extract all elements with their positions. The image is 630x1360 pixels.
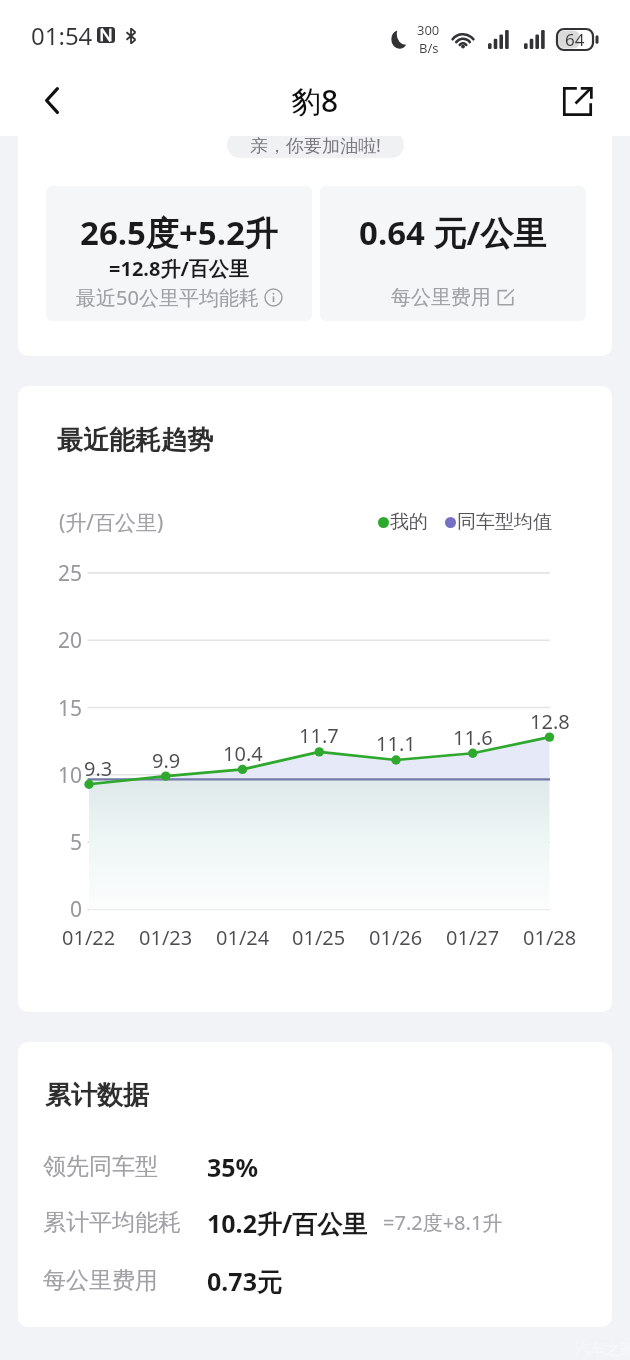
staticText: 每公里费用 [43,1266,158,1295]
staticText: 每公里费用 [391,285,491,310]
staticText: 01:54 [31,19,93,52]
staticText: 9.3 [84,755,113,782]
staticText: 01/22 [62,924,116,951]
staticText: 26.5度+5.2升 [80,210,278,250]
staticText: 25 [58,559,83,588]
staticText: (升/百公里) [59,508,164,537]
staticText: 5 [70,828,83,857]
staticText: 01/23 [139,924,193,951]
staticText: 20 [58,626,83,655]
staticText: B/s [419,39,439,57]
staticText: 0.73元 [207,1264,282,1296]
staticText: 11.6 [453,724,493,751]
staticText: 0.64 元/公里 [359,210,547,250]
button[interactable]: Share [550,74,605,129]
staticText: 15 [58,694,83,723]
button[interactable]: Back [28,76,76,124]
staticText: 我的 [390,510,428,534]
staticText: 0 [70,895,83,924]
staticText: 11.1 [376,730,416,757]
staticText: 64 [565,28,585,51]
button[interactable]: 26.5度+5.2升 [46,186,312,321]
staticText: 10.4 [223,740,263,767]
staticText: 同车型均值 [457,510,552,534]
staticText: 10 [58,761,83,790]
button[interactable]: 0.64 元/公里 [320,186,586,321]
staticText: 领先同车型 [43,1152,158,1181]
staticText: 10.2升/百公里 [207,1206,368,1238]
staticText: 12.8 [530,708,570,735]
staticText: 300 [417,21,440,39]
staticText: =12.8升/百公里 [109,255,249,282]
staticText: 豹8 [291,80,339,121]
staticText: =7.2度+8.1升 [383,1209,503,1236]
staticText: 累计数据 [45,1079,149,1112]
staticText: 亲，你要加油啦! [250,133,381,158]
staticText: 01/26 [369,924,423,951]
staticText: 35% [207,1150,259,1182]
staticText: 最近50公里平均能耗 [76,284,259,310]
staticText: 9.9 [152,747,181,774]
staticText: 累计平均能耗 [43,1208,181,1237]
staticText: 01/27 [446,924,500,951]
staticText: 11.7 [299,722,339,749]
staticText: 最近能耗趋势 [57,424,213,457]
staticText: 01/28 [523,924,577,951]
staticText: 01/24 [216,924,270,951]
staticText: 01/25 [292,924,346,951]
